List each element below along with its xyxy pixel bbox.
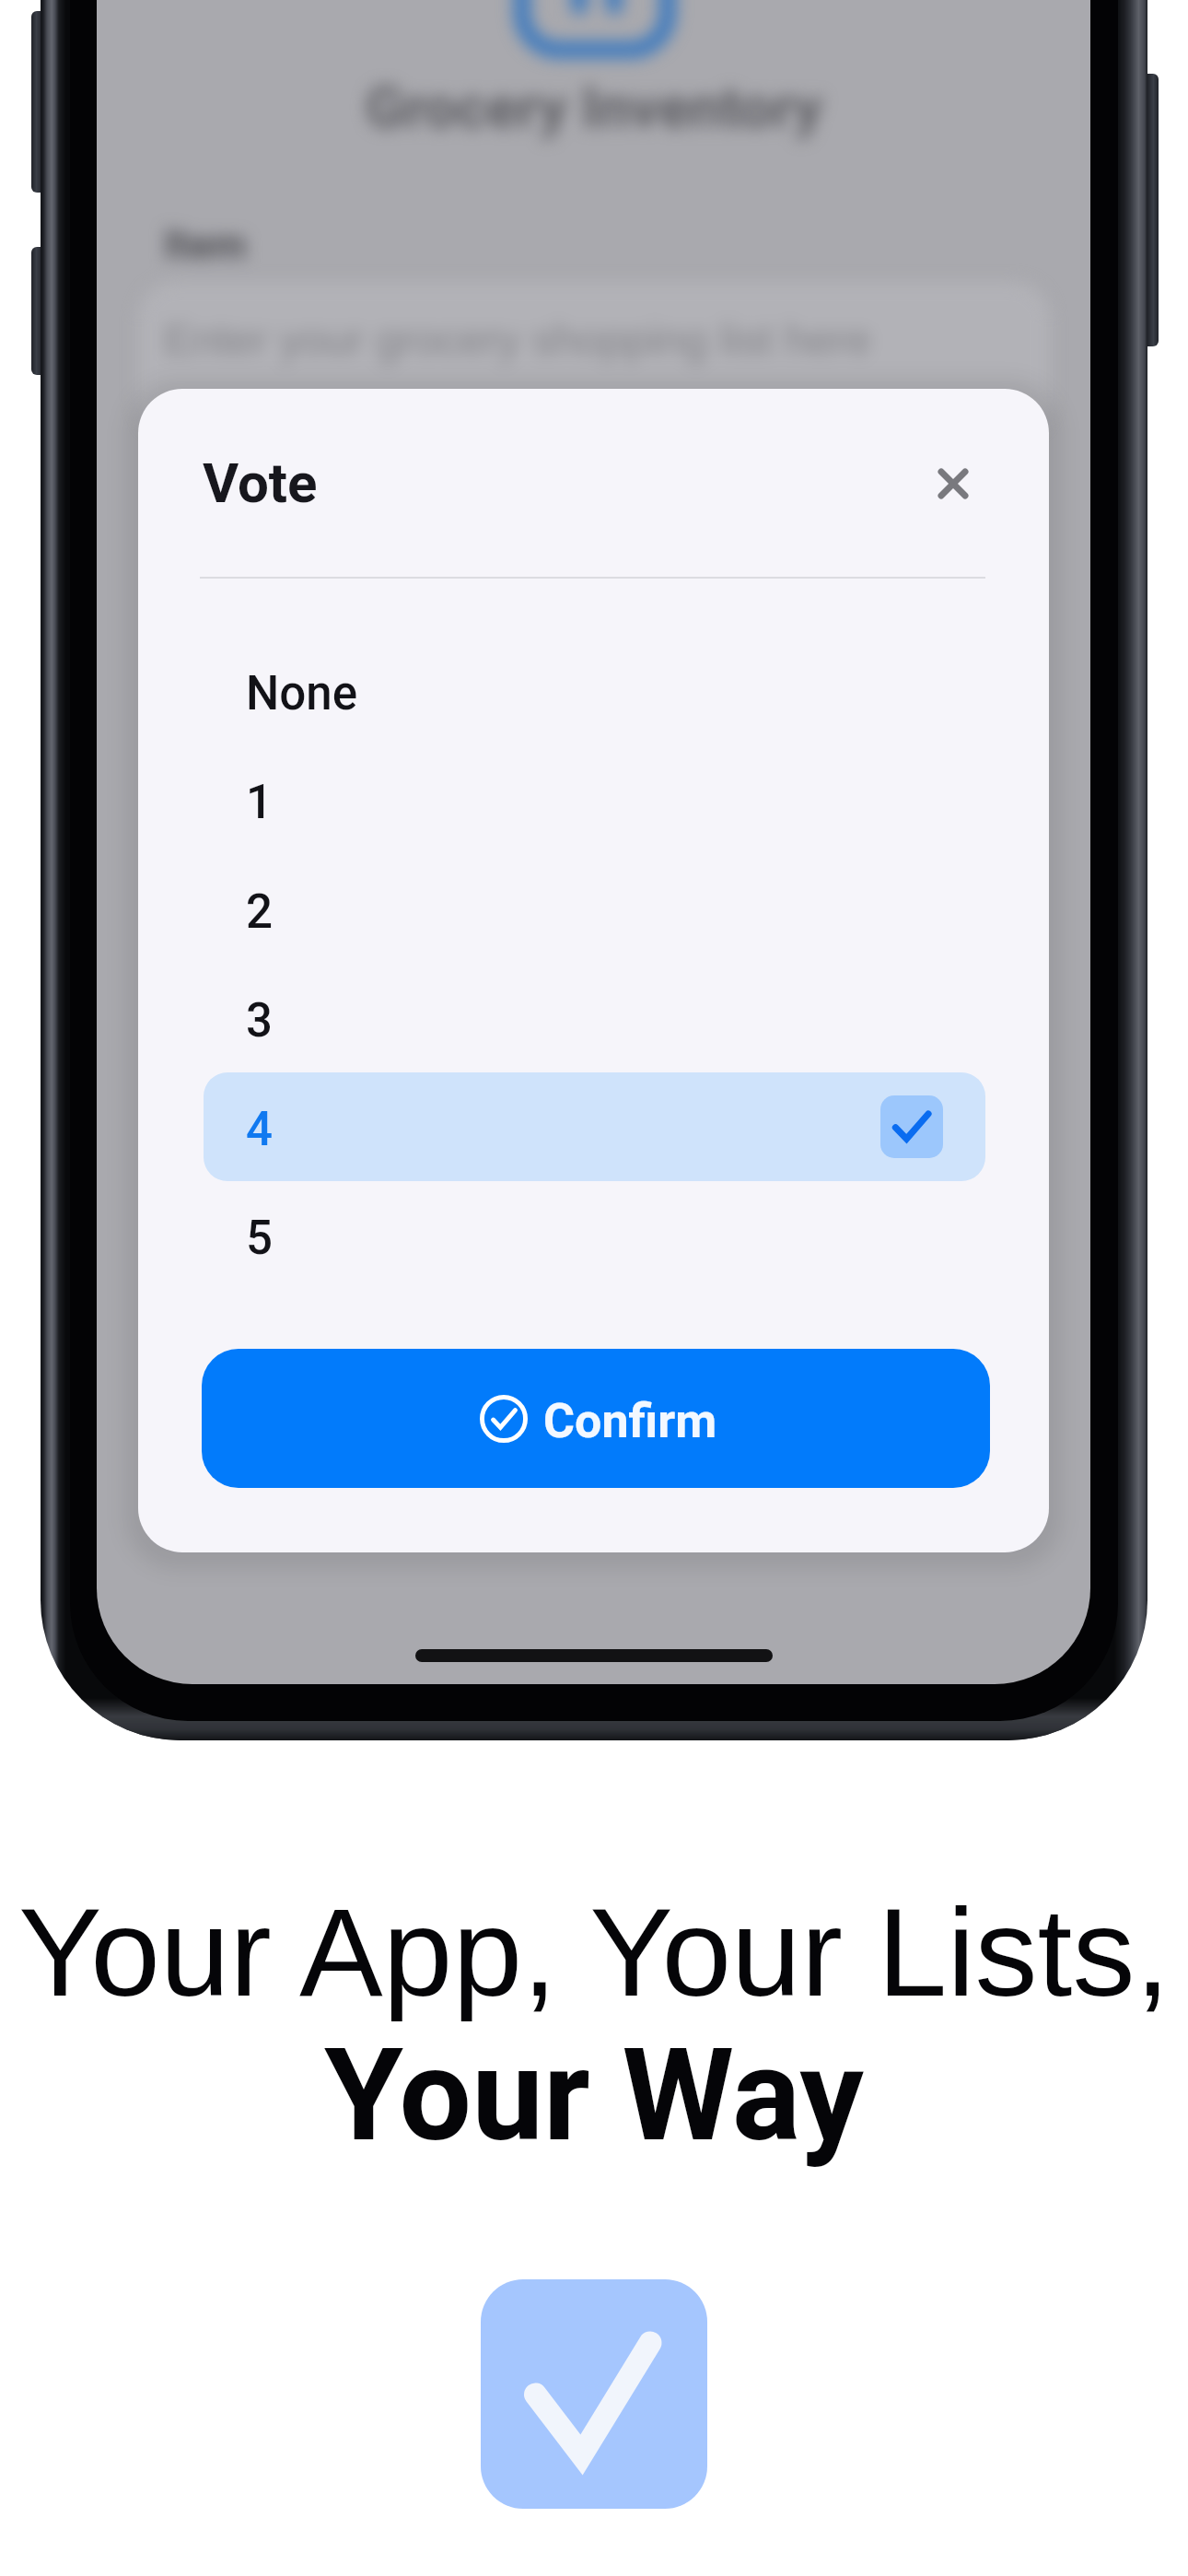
staticText: 3 (246, 993, 273, 1048)
staticText: Item (164, 221, 247, 269)
button[interactable]: Close dialog (912, 442, 995, 525)
staticText: 4 (246, 1102, 273, 1157)
staticText: 1 (246, 775, 273, 830)
staticText: Grocery Inventory (366, 74, 822, 141)
button[interactable]: 3 (204, 964, 985, 1072)
staticText: 5 (246, 1211, 273, 1266)
button[interactable]: None (204, 637, 985, 745)
staticText: Your Way (324, 2020, 865, 2171)
staticText: Your App, Your Lists, (18, 1882, 1171, 2022)
button[interactable]: Confirm (202, 1349, 990, 1488)
staticText: 2 (246, 884, 273, 940)
button[interactable]: 1 (204, 745, 985, 854)
button[interactable]: 4 (204, 1072, 985, 1181)
button[interactable]: 5 (204, 1181, 985, 1290)
staticText: Vote (203, 451, 318, 515)
staticText: None (246, 666, 358, 721)
button[interactable]: 2 (204, 855, 985, 964)
staticText: Enter your grocery shopping list here (164, 315, 872, 364)
staticText: Confirm (543, 1393, 717, 1449)
